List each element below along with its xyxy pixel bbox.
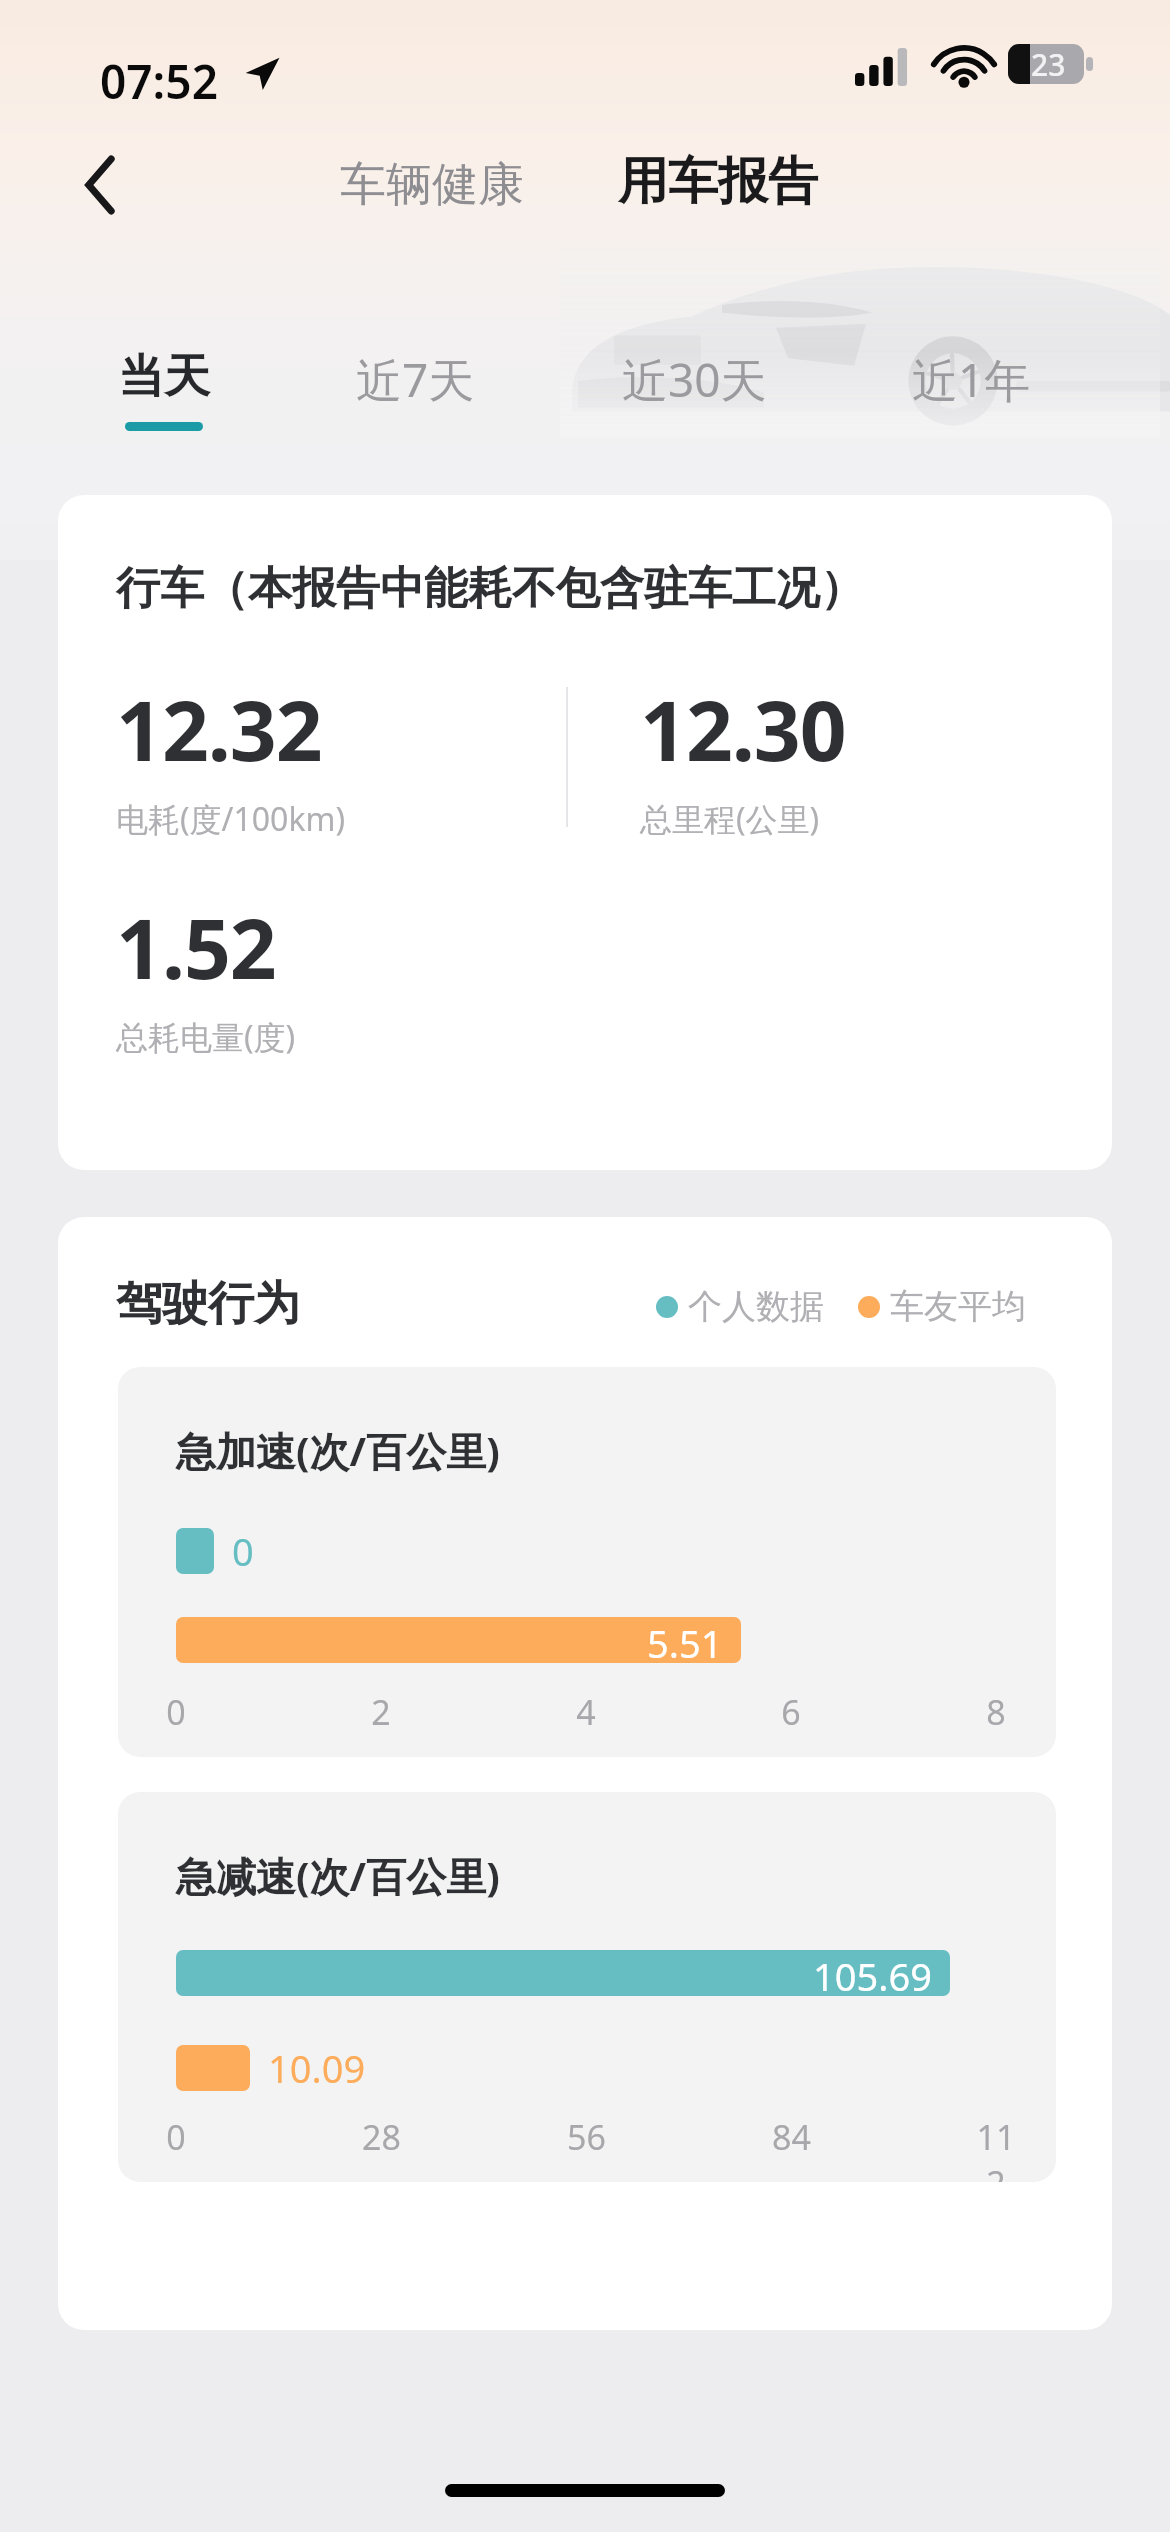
staticText: 车友平均 bbox=[890, 1285, 1026, 1328]
staticText: 6 bbox=[781, 1689, 801, 1735]
button[interactable]: 用车报告 bbox=[608, 144, 828, 234]
staticText: 23 bbox=[1031, 44, 1066, 84]
button[interactable]: Back bbox=[66, 150, 136, 220]
staticText: 0 bbox=[166, 2114, 186, 2160]
staticText: 车辆健康 bbox=[340, 156, 524, 214]
staticText: 近7天 bbox=[356, 348, 475, 411]
staticText: 4 bbox=[576, 1689, 596, 1735]
button[interactable]: 急加速(次/百公里) bbox=[118, 1367, 1056, 1757]
staticText: 10.09 bbox=[268, 2042, 366, 2094]
staticText: 总里程(公里) bbox=[640, 797, 820, 841]
staticText: 28 bbox=[362, 2114, 401, 2160]
staticText: 105.69 bbox=[813, 1950, 932, 1996]
staticText: 行车（本报告中能耗不包含驻车工况） bbox=[116, 561, 864, 616]
staticText: 1.52 bbox=[116, 891, 276, 1003]
staticText: 驾驶行为 bbox=[116, 1275, 300, 1333]
staticText: 急减速(次/百公里) bbox=[176, 1848, 500, 1903]
button[interactable]: 当天 bbox=[94, 342, 234, 437]
staticText: 5.51 bbox=[647, 1617, 723, 1663]
staticText: 急加速(次/百公里) bbox=[176, 1423, 500, 1478]
staticText: 总耗电量(度) bbox=[116, 1015, 296, 1059]
button[interactable]: 急减速(次/百公里) bbox=[118, 1792, 1056, 2182]
staticText: 用车报告 bbox=[618, 150, 818, 213]
staticText: 2 bbox=[371, 1689, 391, 1735]
staticText: 个人数据 bbox=[688, 1285, 824, 1328]
button[interactable]: 近1年 bbox=[888, 342, 1055, 433]
staticText: 07:52 bbox=[100, 50, 218, 113]
button[interactable]: 车辆健康 bbox=[330, 148, 534, 222]
staticText: 112 bbox=[970, 2114, 1022, 2182]
staticText: 84 bbox=[772, 2114, 811, 2160]
staticText: 0 bbox=[166, 1689, 186, 1735]
button[interactable]: 近7天 bbox=[332, 342, 499, 433]
staticText: 12.30 bbox=[640, 673, 846, 785]
button[interactable]: 车友平均 bbox=[858, 1285, 1026, 1328]
button[interactable]: 近30天 bbox=[598, 342, 791, 433]
staticText: 近30天 bbox=[622, 348, 767, 411]
staticText: 近1年 bbox=[912, 348, 1031, 411]
button[interactable]: 行车（本报告中能耗不包含驻车工况） bbox=[58, 495, 1112, 1170]
staticText: 8 bbox=[986, 1689, 1006, 1735]
staticText: 0 bbox=[232, 1525, 254, 1577]
button[interactable]: 个人数据 bbox=[656, 1285, 824, 1328]
staticText: 电耗(度/100km) bbox=[116, 797, 346, 841]
staticText: 当天 bbox=[118, 348, 210, 406]
staticText: 56 bbox=[567, 2114, 606, 2160]
staticText: 12.32 bbox=[116, 673, 322, 785]
